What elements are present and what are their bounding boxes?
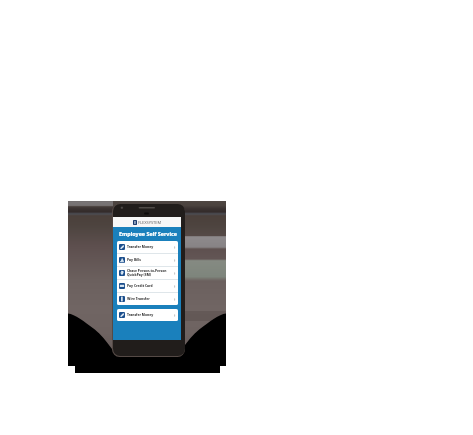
button[interactable]: Pay Credit Card [117, 280, 178, 292]
staticText: Employee Self Service [119, 230, 178, 237]
staticText: Pay Bills [127, 258, 141, 262]
button[interactable]: Transfer Money [117, 241, 178, 253]
staticText: Transfer Money [127, 245, 154, 249]
staticText: FLEXSYSTEM [138, 220, 161, 225]
staticText: Chase Person-to-Person QuickPay (SM) [127, 269, 167, 277]
button[interactable]: Pay Bills [117, 254, 178, 266]
button[interactable]: Transfer Money [117, 309, 178, 321]
staticText: Transfer Money [127, 313, 154, 317]
staticText: Pay Credit Card [127, 284, 153, 288]
staticText: Wire Transfer [127, 297, 150, 301]
button[interactable]: Wire Transfer [117, 293, 178, 305]
button[interactable]: Chase Person-to-Person QuickPay (SM) [117, 267, 178, 279]
